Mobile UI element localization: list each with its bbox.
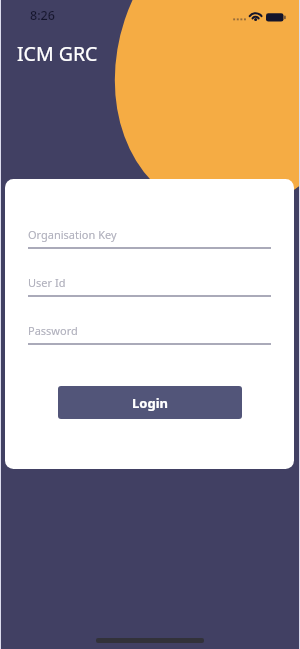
button[interactable]: Login	[58, 386, 242, 419]
staticText: User Id	[28, 275, 66, 290]
staticText: ICM GRC	[17, 40, 98, 67]
button[interactable]: User Id	[28, 275, 271, 297]
staticText: Login	[132, 394, 168, 412]
staticText: Password	[28, 323, 78, 338]
staticText: Organisation Key	[28, 227, 117, 242]
staticText: 8:26	[30, 7, 55, 24]
button[interactable]: Organisation Key	[28, 227, 271, 249]
button[interactable]: Password	[28, 323, 271, 345]
